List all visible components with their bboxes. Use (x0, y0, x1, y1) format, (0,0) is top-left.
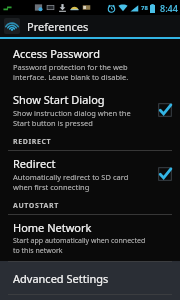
staticText: Show instruction dialog when the Start b… (13, 108, 131, 128)
staticText: Automatically redirect to SD card when f… (13, 172, 129, 192)
staticText: Advanced Settings (13, 271, 109, 286)
button[interactable]: Toggle Redirect (156, 165, 174, 183)
staticText: Preferences (27, 19, 89, 34)
staticText: Start app automatically when connected t… (13, 236, 146, 256)
button[interactable]: Access Password (0, 41, 180, 87)
staticText: Home Network (13, 220, 92, 235)
staticText: 78 (141, 4, 148, 12)
staticText: 8:44 (160, 2, 178, 14)
button[interactable]: Home Network (0, 215, 180, 261)
button[interactable]: Show Start Dialog (0, 87, 180, 133)
staticText: AUTOSTART (13, 201, 59, 211)
staticText: REDIRECT (13, 137, 52, 147)
button[interactable]: Toggle Show Start Dialog (156, 101, 174, 119)
staticText: Show Start Dialog (13, 92, 105, 107)
button[interactable]: Redirect (0, 151, 180, 197)
button[interactable]: Advanced Settings (0, 262, 180, 294)
staticText: Access Password (13, 46, 100, 61)
button[interactable]: Preferences (0, 15, 180, 37)
staticText: Redirect (13, 156, 56, 171)
staticText: Password protection for the web interfac… (13, 62, 129, 82)
